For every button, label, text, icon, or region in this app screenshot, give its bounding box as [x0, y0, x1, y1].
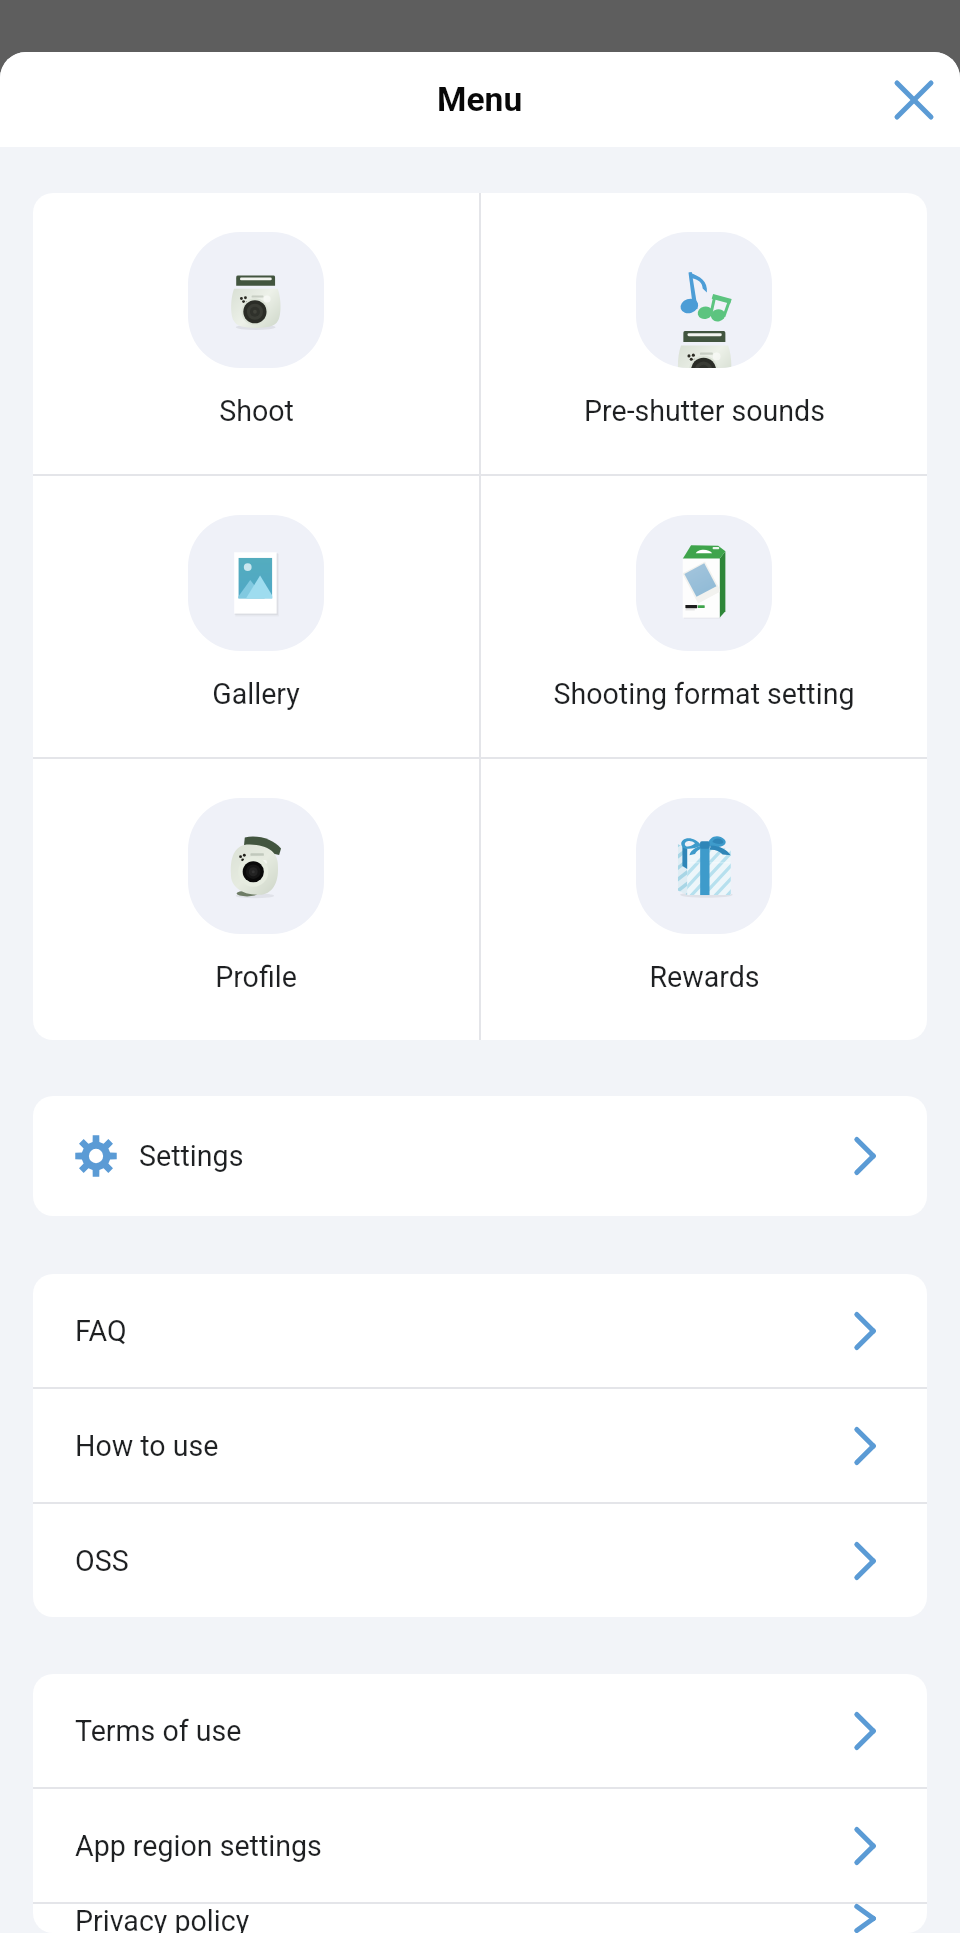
button[interactable]: Rewards [481, 759, 927, 1040]
staticText: Shooting format setting [553, 677, 855, 711]
staticText: How to use [75, 1429, 219, 1463]
staticText: FAQ [75, 1314, 127, 1348]
button[interactable]: App region settings [33, 1789, 927, 1902]
staticText: Pre-shutter sounds [584, 394, 825, 428]
button[interactable]: Shoot [33, 193, 479, 474]
button[interactable]: How to use [33, 1389, 927, 1502]
button[interactable]: Profile [33, 759, 479, 1040]
staticText: Settings [139, 1139, 244, 1173]
button[interactable]: Pre-shutter sounds [481, 193, 927, 474]
button[interactable]: Close [872, 58, 956, 142]
button[interactable]: Settings [33, 1096, 927, 1216]
staticText: OSS [75, 1544, 129, 1578]
button[interactable]: Shooting format setting [481, 476, 927, 757]
staticText: Privacy policy [75, 1904, 250, 1933]
button[interactable]: Terms of use [33, 1674, 927, 1787]
staticText: Rewards [649, 960, 760, 994]
staticText: App region settings [75, 1829, 322, 1863]
staticText: Gallery [212, 677, 300, 711]
staticText: Terms of use [75, 1714, 242, 1748]
staticText: Profile [215, 960, 297, 994]
button[interactable]: Gallery [33, 476, 479, 757]
staticText: Shoot [219, 394, 294, 428]
staticText: Menu [437, 80, 523, 119]
button[interactable]: FAQ [33, 1274, 927, 1387]
button[interactable]: Privacy policy [33, 1904, 927, 1933]
button[interactable]: OSS [33, 1504, 927, 1617]
